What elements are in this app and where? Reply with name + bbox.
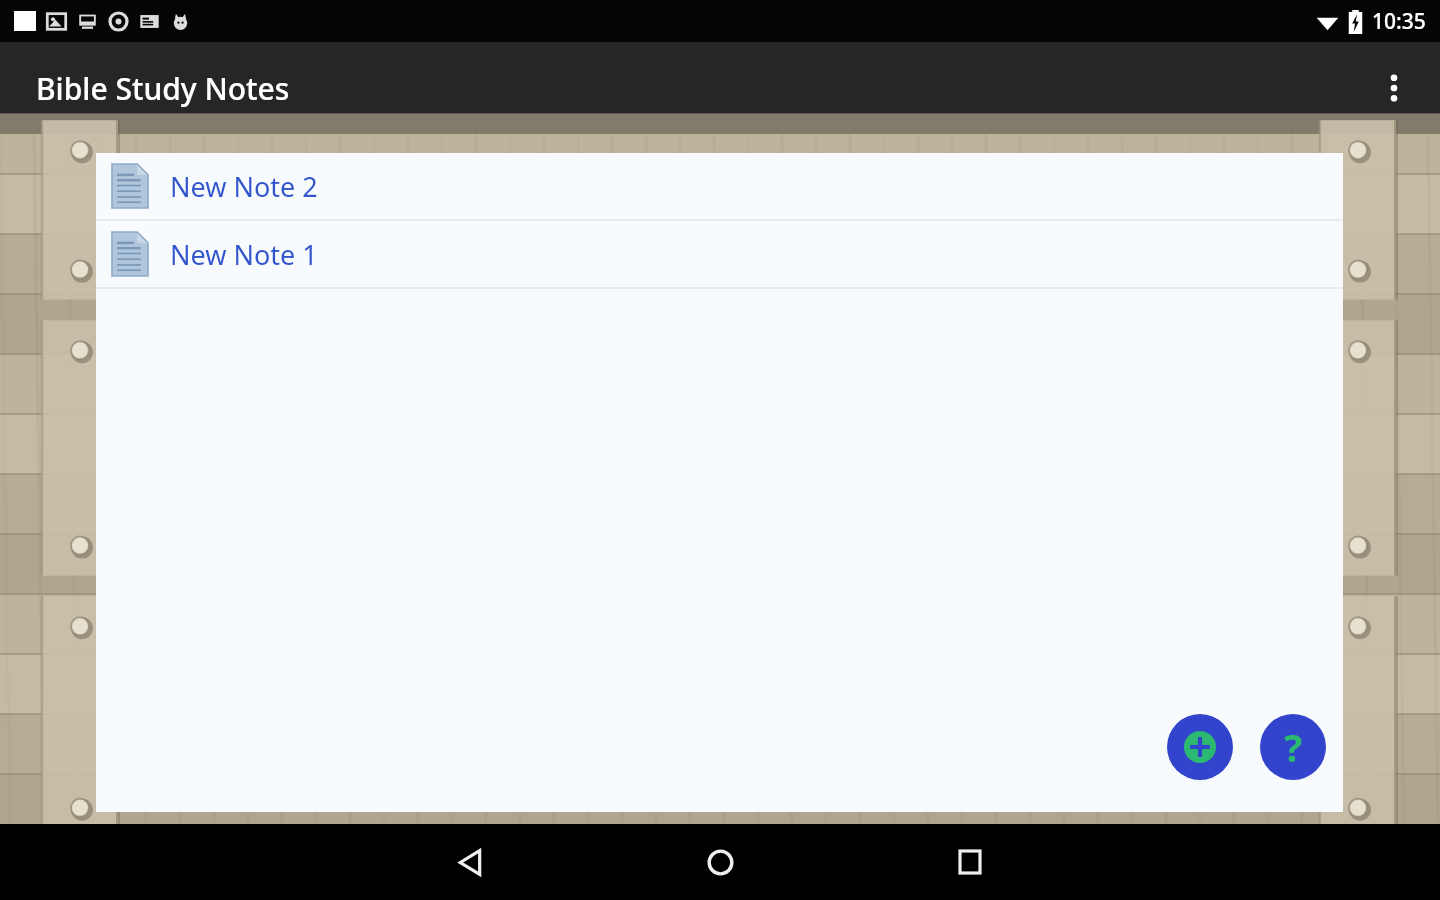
button[interactable]: Back [440,832,500,892]
button[interactable]: Recent apps [940,832,1000,892]
staticText: New Note 2 [170,168,318,205]
staticText: Bible Study Notes [36,68,290,109]
button[interactable]: New Note 1 [96,221,1343,287]
button[interactable]: Add note [1167,714,1233,780]
button[interactable]: Help [1260,714,1326,780]
button[interactable]: New Note 2 [96,153,1343,219]
button[interactable]: Home [690,832,750,892]
staticText: New Note 1 [170,236,318,273]
button[interactable]: More options [1358,52,1430,124]
staticText: ? [1284,721,1303,773]
staticText: 10:35 [1372,7,1426,36]
